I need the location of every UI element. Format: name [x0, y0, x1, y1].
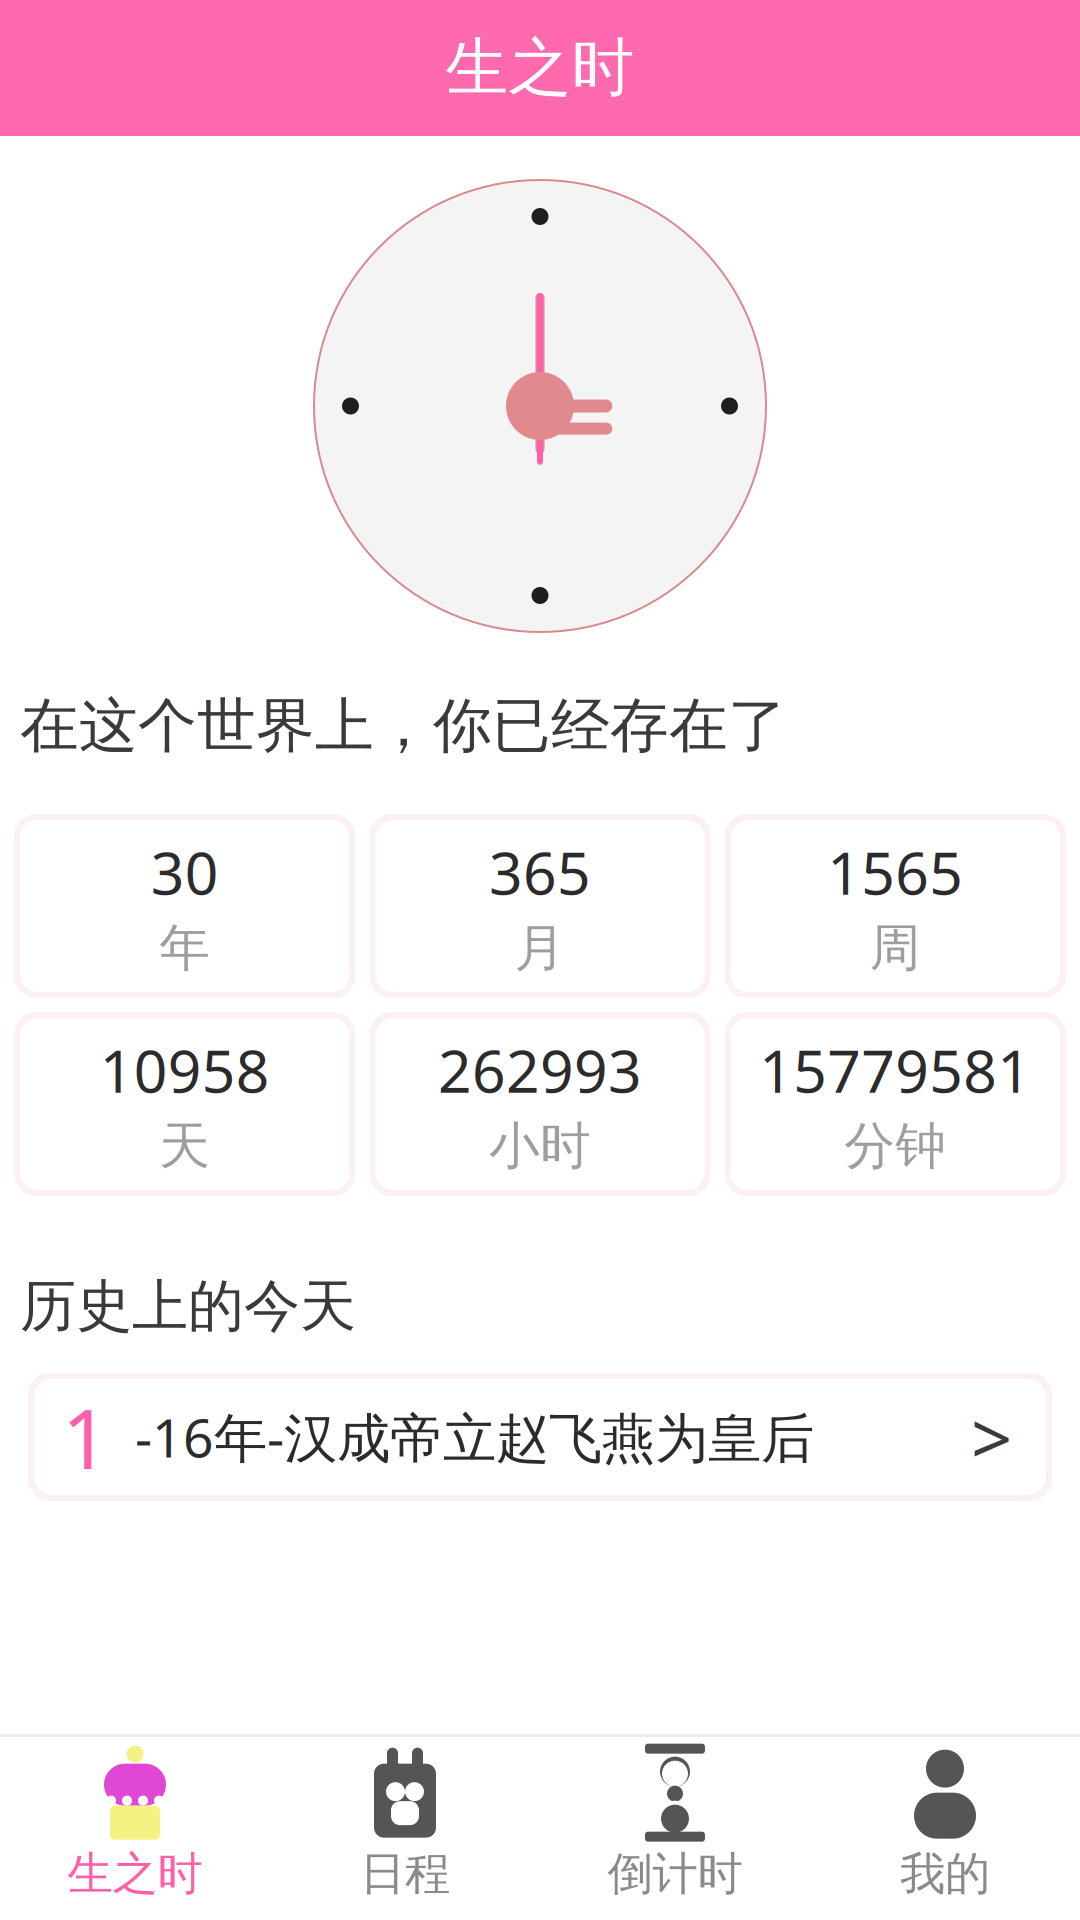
button[interactable]: 生之时 — [0, 1737, 270, 1916]
staticText: 年 — [159, 917, 210, 979]
staticText: -16年-汉成帝立赵飞燕为皇后 — [135, 1401, 814, 1472]
staticText: 生之时 — [445, 29, 634, 106]
button[interactable]: 我的 — [810, 1737, 1080, 1916]
staticText: 小时 — [489, 1115, 591, 1177]
staticText: 日程 — [360, 1846, 450, 1902]
button[interactable]: 倒计时 — [540, 1737, 810, 1916]
staticText: 天 — [159, 1115, 210, 1177]
staticText: 10958 — [100, 1031, 270, 1109]
staticText: 1565 — [827, 833, 963, 911]
button[interactable]: 1 — [28, 1373, 1052, 1501]
staticText: 历史上的今天 — [20, 1272, 356, 1341]
staticText: 30 — [151, 833, 219, 911]
staticText: 生之时 — [67, 1846, 202, 1902]
staticText: 倒计时 — [607, 1846, 742, 1902]
staticText: 分钟 — [844, 1115, 946, 1177]
staticText: 262993 — [438, 1031, 642, 1109]
staticText: 月 — [514, 917, 565, 979]
staticText: 我的 — [900, 1846, 990, 1902]
staticText: 周 — [870, 917, 921, 979]
staticText: 365 — [489, 833, 591, 911]
staticText: 15779581 — [759, 1031, 1031, 1109]
staticText: > — [971, 1389, 1012, 1485]
staticText: 1 — [62, 1382, 109, 1492]
button[interactable]: 日程 — [270, 1737, 540, 1916]
staticText: 在这个世界上，你已经存在了 — [20, 690, 787, 762]
